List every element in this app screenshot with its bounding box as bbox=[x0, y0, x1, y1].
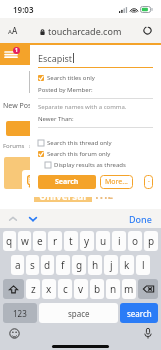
button[interactable]: q bbox=[3, 231, 16, 251]
button[interactable]: Search this thread only bbox=[38, 139, 153, 147]
staticText: v bbox=[78, 282, 84, 296]
button[interactable]: g bbox=[72, 255, 86, 275]
staticText: search bbox=[127, 308, 152, 319]
staticText: g bbox=[76, 258, 83, 272]
staticText: b bbox=[94, 282, 101, 296]
staticText: Universal bbox=[39, 189, 87, 202]
staticText: l bbox=[142, 258, 145, 272]
button[interactable]: Done bbox=[120, 210, 161, 228]
staticText: » bbox=[29, 142, 33, 150]
button[interactable]: Backspace bbox=[138, 279, 158, 299]
button[interactable]: r bbox=[48, 231, 62, 251]
staticText: r bbox=[53, 234, 58, 248]
staticText: y bbox=[84, 234, 90, 248]
staticText: h bbox=[92, 258, 99, 272]
staticText: Search bbox=[55, 177, 79, 187]
staticText: m bbox=[124, 282, 134, 296]
button[interactable]: Display results as threads bbox=[45, 161, 153, 169]
staticText: p bbox=[148, 234, 155, 248]
button[interactable]: t bbox=[64, 231, 78, 251]
staticText: 123 bbox=[13, 308, 27, 319]
button[interactable]: Dictate bbox=[144, 328, 152, 339]
staticText: Escapist bbox=[38, 52, 73, 64]
button[interactable]: s bbox=[26, 255, 39, 275]
staticText: toucharcade.com bbox=[48, 25, 122, 37]
staticText: t bbox=[69, 234, 73, 248]
button[interactable]: Next field bbox=[27, 213, 39, 225]
staticText: 19:03 bbox=[13, 4, 34, 15]
button[interactable]: Search bbox=[38, 175, 96, 189]
button[interactable]: z bbox=[26, 279, 40, 299]
staticText: A bbox=[12, 25, 18, 36]
button[interactable]: e bbox=[33, 231, 46, 251]
button[interactable]: j bbox=[104, 255, 118, 275]
staticText: · bbox=[148, 177, 150, 187]
staticText: space bbox=[68, 308, 90, 319]
staticText: q bbox=[6, 234, 13, 248]
button[interactable]: x bbox=[42, 279, 56, 299]
button[interactable]: h bbox=[88, 255, 102, 275]
staticText: Posted by Member: bbox=[38, 86, 93, 94]
staticText: d bbox=[44, 258, 51, 272]
button[interactable]: a bbox=[11, 255, 24, 275]
button[interactable]: More options bbox=[144, 175, 153, 189]
button[interactable]: space bbox=[39, 303, 118, 323]
button[interactable]: Emoji bbox=[9, 328, 20, 339]
staticText: Search this forum only bbox=[47, 150, 111, 158]
button[interactable]: m bbox=[122, 279, 136, 299]
staticText: f bbox=[61, 258, 65, 272]
button[interactable]: y bbox=[80, 231, 94, 251]
staticText: i bbox=[118, 234, 121, 248]
button[interactable]: 123 bbox=[3, 303, 37, 323]
staticText: 1 bbox=[15, 47, 18, 54]
staticText: a bbox=[15, 258, 21, 272]
button[interactable]: Search titles only bbox=[38, 74, 153, 82]
staticText: z bbox=[31, 282, 36, 296]
staticText: o bbox=[132, 234, 139, 248]
button[interactable]: b bbox=[90, 279, 104, 299]
button[interactable]: c bbox=[58, 279, 72, 299]
button[interactable]: Search this forum only bbox=[38, 150, 153, 158]
staticText: New Posts bbox=[3, 101, 38, 111]
staticText: Search titles only bbox=[47, 74, 95, 82]
staticText: Separate names with a comma. bbox=[38, 103, 127, 111]
button[interactable]: search bbox=[120, 303, 158, 323]
button[interactable]: Shift bbox=[3, 279, 24, 299]
button[interactable]: k bbox=[120, 255, 134, 275]
button[interactable]: More... bbox=[100, 175, 133, 189]
staticText: Search this thread only bbox=[47, 139, 112, 147]
button[interactable]: n bbox=[106, 279, 120, 299]
staticText: s bbox=[30, 258, 35, 272]
staticText: w bbox=[21, 234, 29, 248]
staticText: Done bbox=[129, 213, 152, 225]
button[interactable]: d bbox=[41, 255, 54, 275]
button[interactable]: Text size bbox=[0, 21, 26, 40]
button[interactable]: f bbox=[56, 255, 70, 275]
staticText: x bbox=[46, 282, 52, 296]
staticText: c bbox=[63, 282, 68, 296]
staticText: Forums bbox=[3, 142, 25, 150]
button[interactable]: Menu bbox=[0, 47, 21, 62]
button[interactable]: i bbox=[112, 231, 126, 251]
staticText: k bbox=[124, 258, 130, 272]
staticText: j bbox=[110, 258, 113, 272]
button[interactable]: Previous field bbox=[7, 213, 19, 225]
button[interactable]: Reload bbox=[143, 26, 152, 35]
staticText: n bbox=[110, 282, 117, 296]
staticText: THE bbox=[94, 188, 114, 202]
button[interactable]: u bbox=[96, 231, 110, 251]
staticText: More... bbox=[105, 177, 128, 187]
button[interactable]: w bbox=[18, 231, 31, 251]
staticText: u bbox=[100, 234, 107, 248]
button[interactable]: p bbox=[144, 231, 158, 251]
button[interactable]: l bbox=[136, 255, 150, 275]
button[interactable]: v bbox=[74, 279, 88, 299]
staticText: Newer Than: bbox=[38, 115, 74, 123]
staticText: Display results as threads bbox=[54, 161, 126, 169]
staticText: e bbox=[37, 234, 43, 248]
button[interactable]: o bbox=[128, 231, 142, 251]
staticText: A bbox=[8, 28, 12, 36]
